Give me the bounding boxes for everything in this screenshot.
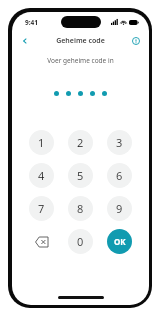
staticText: OK	[114, 236, 126, 247]
staticText: 1	[38, 135, 45, 150]
staticText: 7	[38, 201, 45, 216]
button[interactable]: 2	[68, 130, 93, 155]
button[interactable]: 6	[107, 163, 132, 188]
staticText: 2	[77, 135, 84, 150]
staticText: 8	[77, 201, 84, 216]
button[interactable]: 4	[29, 163, 54, 188]
button[interactable]: Info	[129, 34, 143, 48]
button[interactable]: 0	[68, 229, 93, 254]
staticText: 4	[38, 168, 45, 183]
staticText: 5	[77, 168, 84, 183]
staticText: Voer geheime code in	[12, 56, 149, 65]
staticText: 9:41	[25, 18, 38, 27]
button[interactable]: Back	[18, 34, 32, 48]
staticText: 3	[116, 135, 123, 150]
button[interactable]: 9	[107, 196, 132, 221]
staticText: 0	[77, 234, 84, 249]
button[interactable]: Backspace	[29, 229, 54, 254]
button[interactable]: 5	[68, 163, 93, 188]
button[interactable]: 3	[107, 130, 132, 155]
staticText: Geheime code	[56, 36, 105, 46]
staticText: 6	[116, 168, 123, 183]
staticText: 9	[116, 201, 123, 216]
button[interactable]: OK	[107, 229, 132, 254]
button[interactable]: 8	[68, 196, 93, 221]
button[interactable]: 7	[29, 196, 54, 221]
button[interactable]: 1	[29, 130, 54, 155]
